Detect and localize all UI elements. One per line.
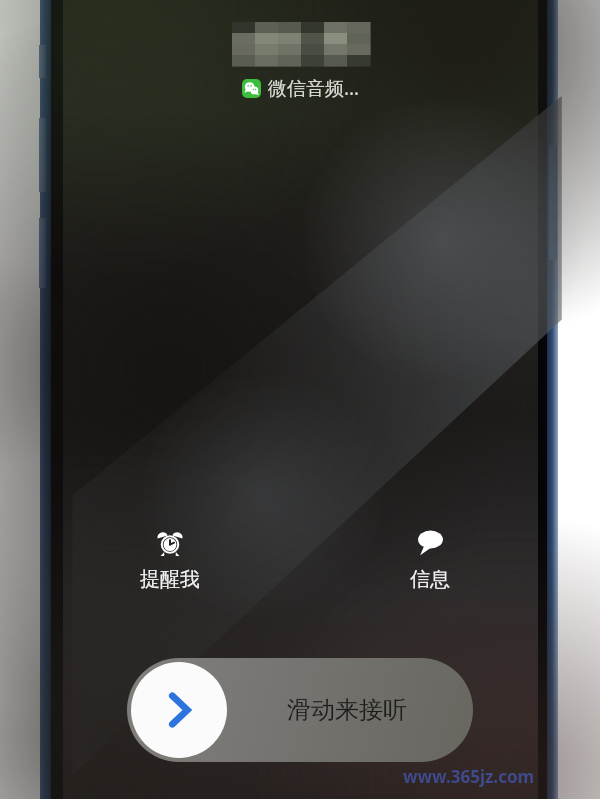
button[interactable]: 信息 [375,527,485,592]
button[interactable]: 微信音频… [242,75,360,101]
button[interactable]: 提醒我 [115,527,225,592]
staticText: 信息 [410,567,450,592]
button[interactable]: 接听 [131,662,227,758]
staticText: 微信音频… [268,75,360,101]
button[interactable]: 滑动来接听 [127,658,473,762]
staticText: 提醒我 [140,567,200,592]
staticText: 滑动来接听 [287,695,407,725]
staticText: www.365jz.com [403,765,535,788]
